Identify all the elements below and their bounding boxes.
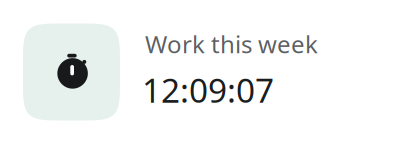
button[interactable]: Work this week (0, 0, 406, 144)
staticText: Work this week (145, 28, 318, 60)
staticText: 12:09:07 (142, 68, 274, 112)
